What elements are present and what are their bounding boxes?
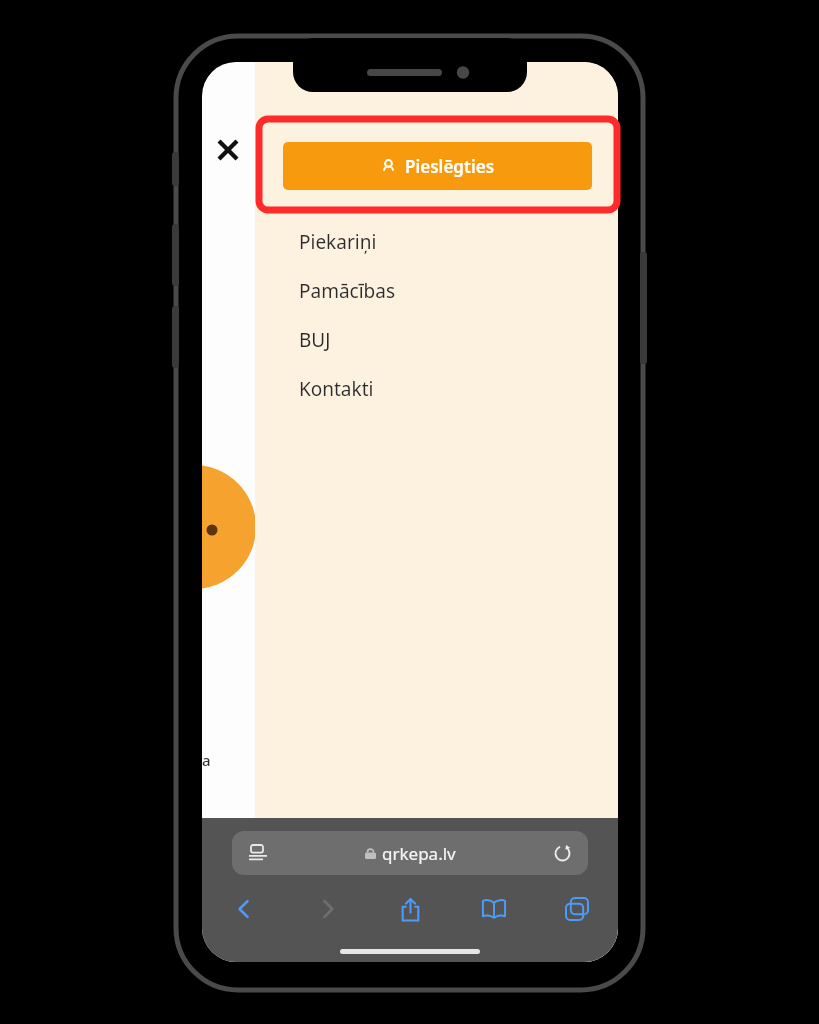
staticText: Pieslēgties xyxy=(405,155,495,178)
other: Reload xyxy=(536,831,588,875)
staticText: Pamācības xyxy=(299,278,396,304)
button[interactable]: Tabs xyxy=(535,887,618,931)
button[interactable]: Pamācības xyxy=(255,266,618,315)
button[interactable]: Forward xyxy=(286,887,369,931)
staticText: BUJ xyxy=(299,327,331,353)
button[interactable]: Page settings xyxy=(232,831,588,875)
button[interactable]: BUJ xyxy=(255,315,618,364)
button[interactable]: Share xyxy=(369,887,452,931)
button[interactable]: Piekariņi xyxy=(255,217,618,266)
button[interactable]: Back xyxy=(202,887,286,931)
staticText: Kontakti xyxy=(299,376,374,402)
staticText: Piekariņi xyxy=(299,229,377,255)
other: Page settings xyxy=(232,831,284,875)
button[interactable]: Bookmarks xyxy=(452,887,535,931)
button[interactable]: Close menu xyxy=(206,128,250,172)
staticText: qrkepa.lv xyxy=(382,842,456,865)
button[interactable]: Pieslēgties xyxy=(283,142,592,190)
button[interactable]: Kontakti xyxy=(255,364,618,413)
staticText: a xyxy=(202,750,211,770)
